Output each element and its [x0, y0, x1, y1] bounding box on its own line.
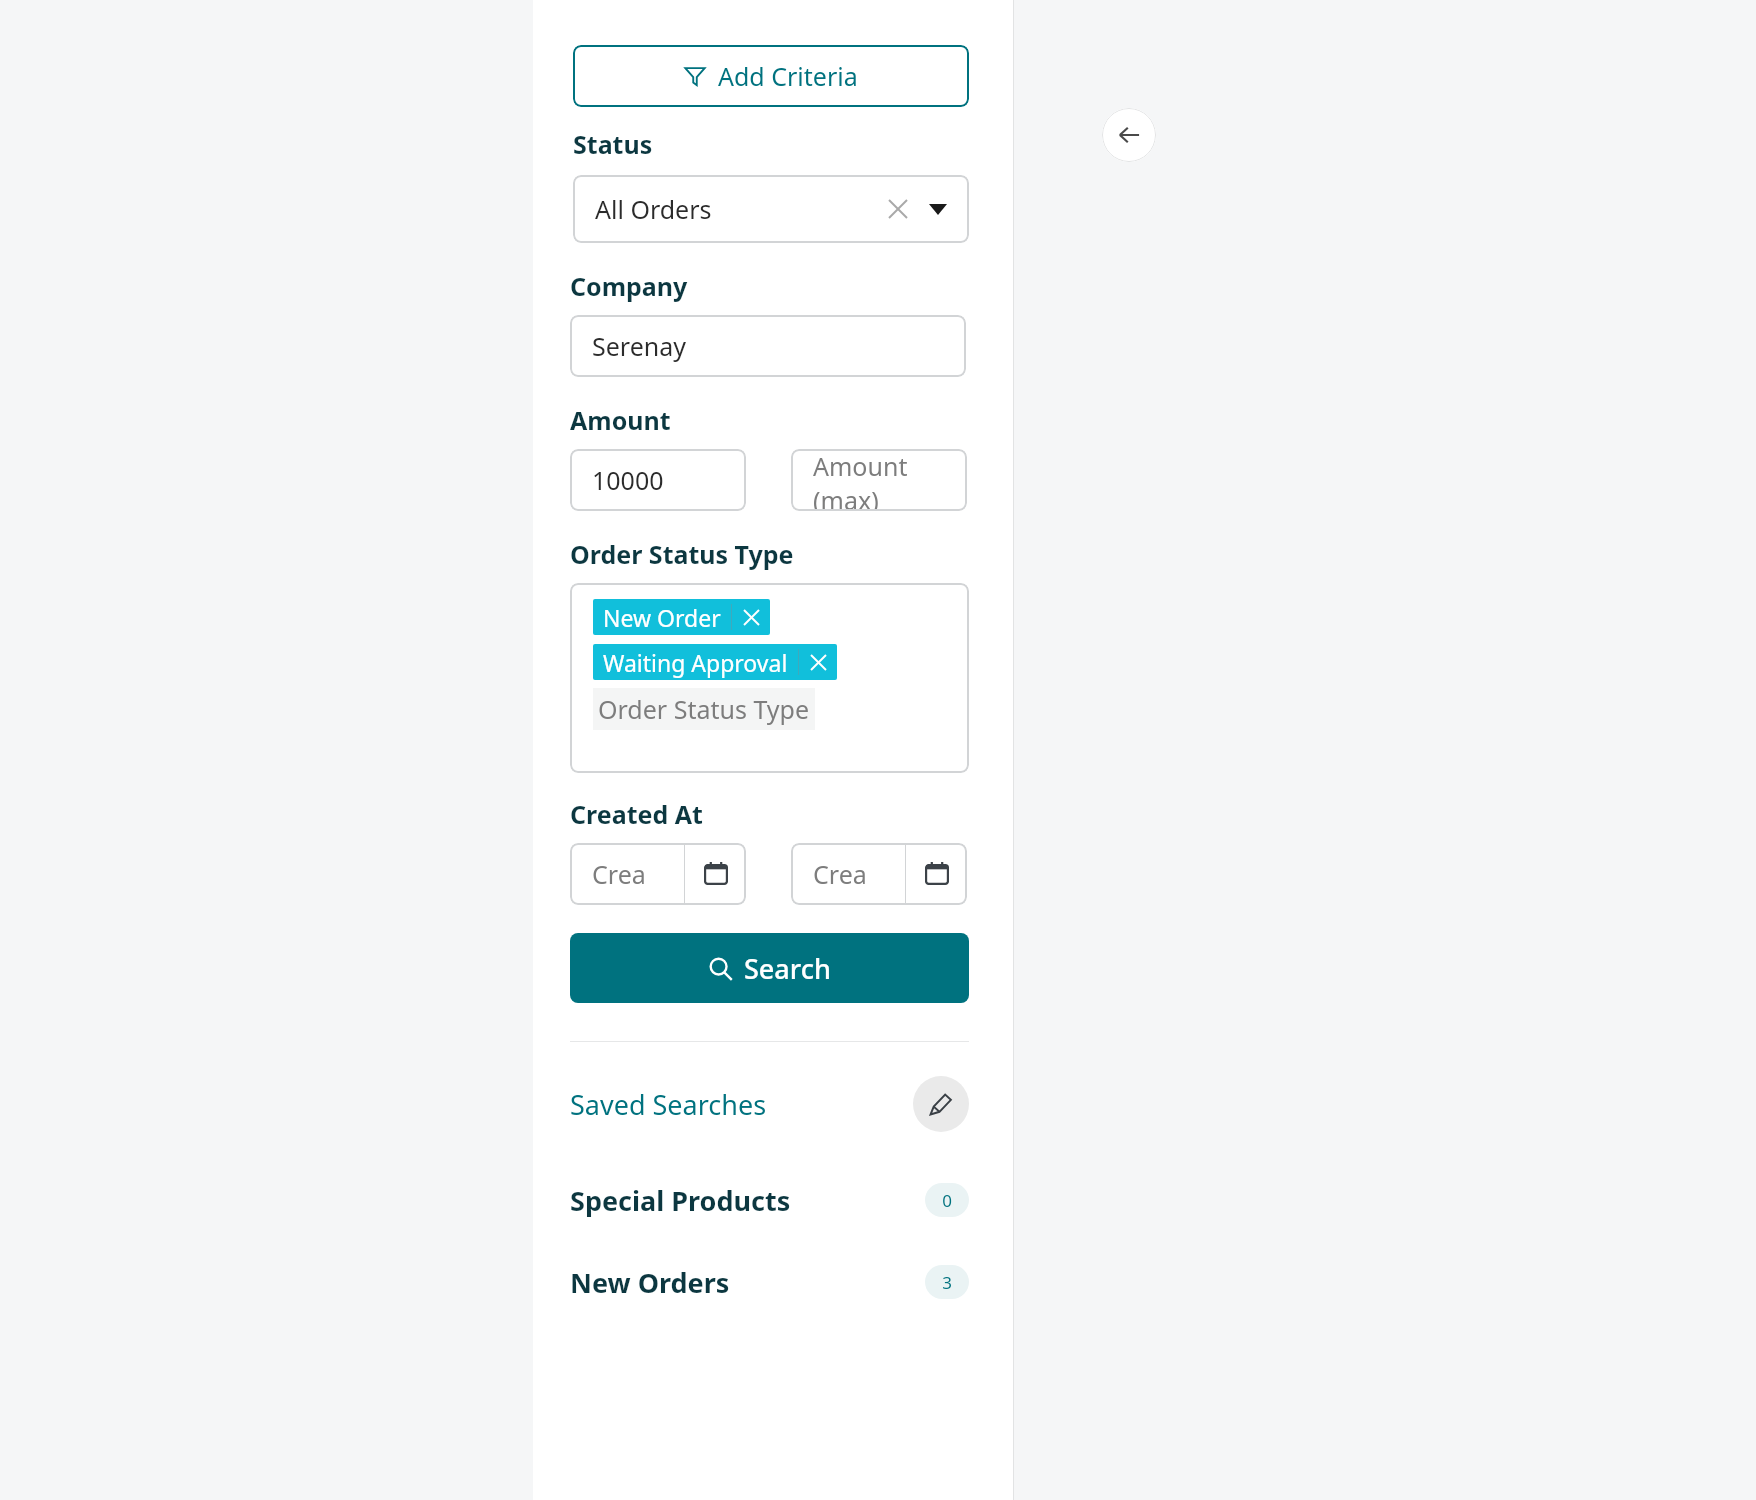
staticText: Search	[744, 950, 831, 987]
staticText: Waiting Approval	[603, 647, 788, 678]
staticText: Crea	[592, 857, 646, 891]
button[interactable]: Saved Searches	[570, 1074, 969, 1134]
staticText: 3	[942, 1271, 952, 1294]
button[interactable]: Crea	[791, 843, 905, 905]
button[interactable]: Amount (max)	[791, 449, 967, 511]
button[interactable]: Waiting Approval	[593, 644, 837, 680]
staticText: Crea	[813, 857, 867, 891]
button[interactable]: Pick date	[906, 843, 967, 905]
button[interactable]: New Orders	[570, 1258, 969, 1306]
staticText: Special Products	[570, 1182, 791, 1219]
button[interactable]: Special Products	[570, 1176, 969, 1224]
button[interactable]: Remove New Order	[732, 599, 770, 635]
staticText: Amount (max)	[813, 449, 967, 511]
staticText: Amount	[570, 403, 671, 437]
staticText: Company	[570, 269, 688, 303]
button[interactable]: Serenay	[570, 315, 966, 377]
staticText: New Orders	[570, 1264, 730, 1301]
button[interactable]: Collapse panel	[1102, 108, 1156, 162]
button[interactable]: Search	[570, 933, 969, 1003]
staticText: New Order	[603, 602, 721, 633]
staticText: Saved Searches	[570, 1086, 767, 1123]
button[interactable]: Pick date	[685, 843, 746, 905]
staticText: 10000	[592, 463, 664, 497]
button[interactable]: 10000	[570, 449, 746, 511]
staticText: Serenay	[592, 329, 686, 363]
button[interactable]: Remove Waiting Approval	[799, 644, 837, 680]
staticText: Created At	[570, 797, 703, 831]
button[interactable]: All Orders	[573, 175, 969, 243]
button[interactable]: Crea	[570, 843, 684, 905]
button[interactable]: Edit saved searches	[913, 1076, 969, 1132]
button[interactable]: Add Criteria	[573, 45, 969, 107]
staticText: Order Status Type	[598, 692, 810, 726]
button[interactable]: New Order	[570, 583, 969, 773]
staticText: Status	[573, 127, 653, 161]
staticText: Order Status Type	[570, 537, 794, 571]
staticText: 0	[942, 1189, 952, 1212]
button[interactable]: New Order	[593, 599, 770, 635]
staticText: All Orders	[595, 192, 712, 226]
staticText: Add Criteria	[718, 59, 858, 93]
